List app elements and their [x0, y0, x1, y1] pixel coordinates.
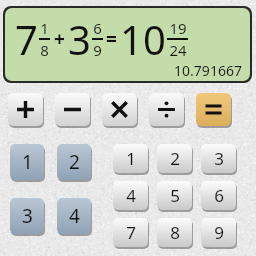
staticText: 5	[170, 184, 180, 207]
staticText: 2	[170, 147, 180, 170]
button[interactable]: Divide	[149, 93, 184, 126]
staticText: 1	[40, 18, 49, 38]
staticText: =	[106, 26, 117, 52]
staticText: 10.791667	[174, 61, 242, 80]
button[interactable]: 4	[57, 198, 91, 234]
staticText: 3	[214, 147, 224, 170]
button[interactable]: Equals	[196, 93, 231, 126]
staticText: 6	[214, 184, 224, 207]
button[interactable]: 6	[201, 181, 236, 210]
staticText: 7	[15, 12, 38, 66]
staticText: 4	[126, 184, 136, 207]
button[interactable]: 4	[113, 181, 148, 210]
staticText: 19	[169, 18, 187, 38]
button[interactable]: 1	[113, 144, 148, 173]
button[interactable]: 1	[10, 144, 44, 180]
staticText: 4	[69, 203, 80, 229]
staticText: 24	[169, 40, 187, 60]
staticText: 2	[69, 149, 80, 175]
button[interactable]: 3	[10, 198, 44, 234]
button[interactable]: Plus	[8, 93, 43, 126]
staticText: 1	[126, 147, 136, 170]
button[interactable]: Minus	[55, 93, 90, 126]
staticText: 8	[40, 40, 49, 60]
button[interactable]: 2	[157, 144, 192, 173]
button[interactable]: 7	[113, 218, 148, 247]
staticText: 3	[22, 203, 33, 229]
staticText: 1	[22, 149, 33, 175]
button[interactable]: 9	[201, 218, 236, 247]
staticText: 7	[126, 221, 136, 244]
button[interactable]: 2	[57, 144, 91, 180]
staticText: 9	[214, 221, 224, 244]
staticText: +	[54, 26, 65, 52]
staticText: 9	[93, 40, 102, 60]
staticText: 10	[120, 12, 166, 66]
button[interactable]: 3	[201, 144, 236, 173]
button[interactable]: 5	[157, 181, 192, 210]
button[interactable]: Multiply	[102, 93, 137, 126]
staticText: 3	[68, 12, 91, 66]
staticText: 8	[170, 221, 180, 244]
staticText: 6	[93, 18, 102, 38]
button[interactable]: 8	[157, 218, 192, 247]
